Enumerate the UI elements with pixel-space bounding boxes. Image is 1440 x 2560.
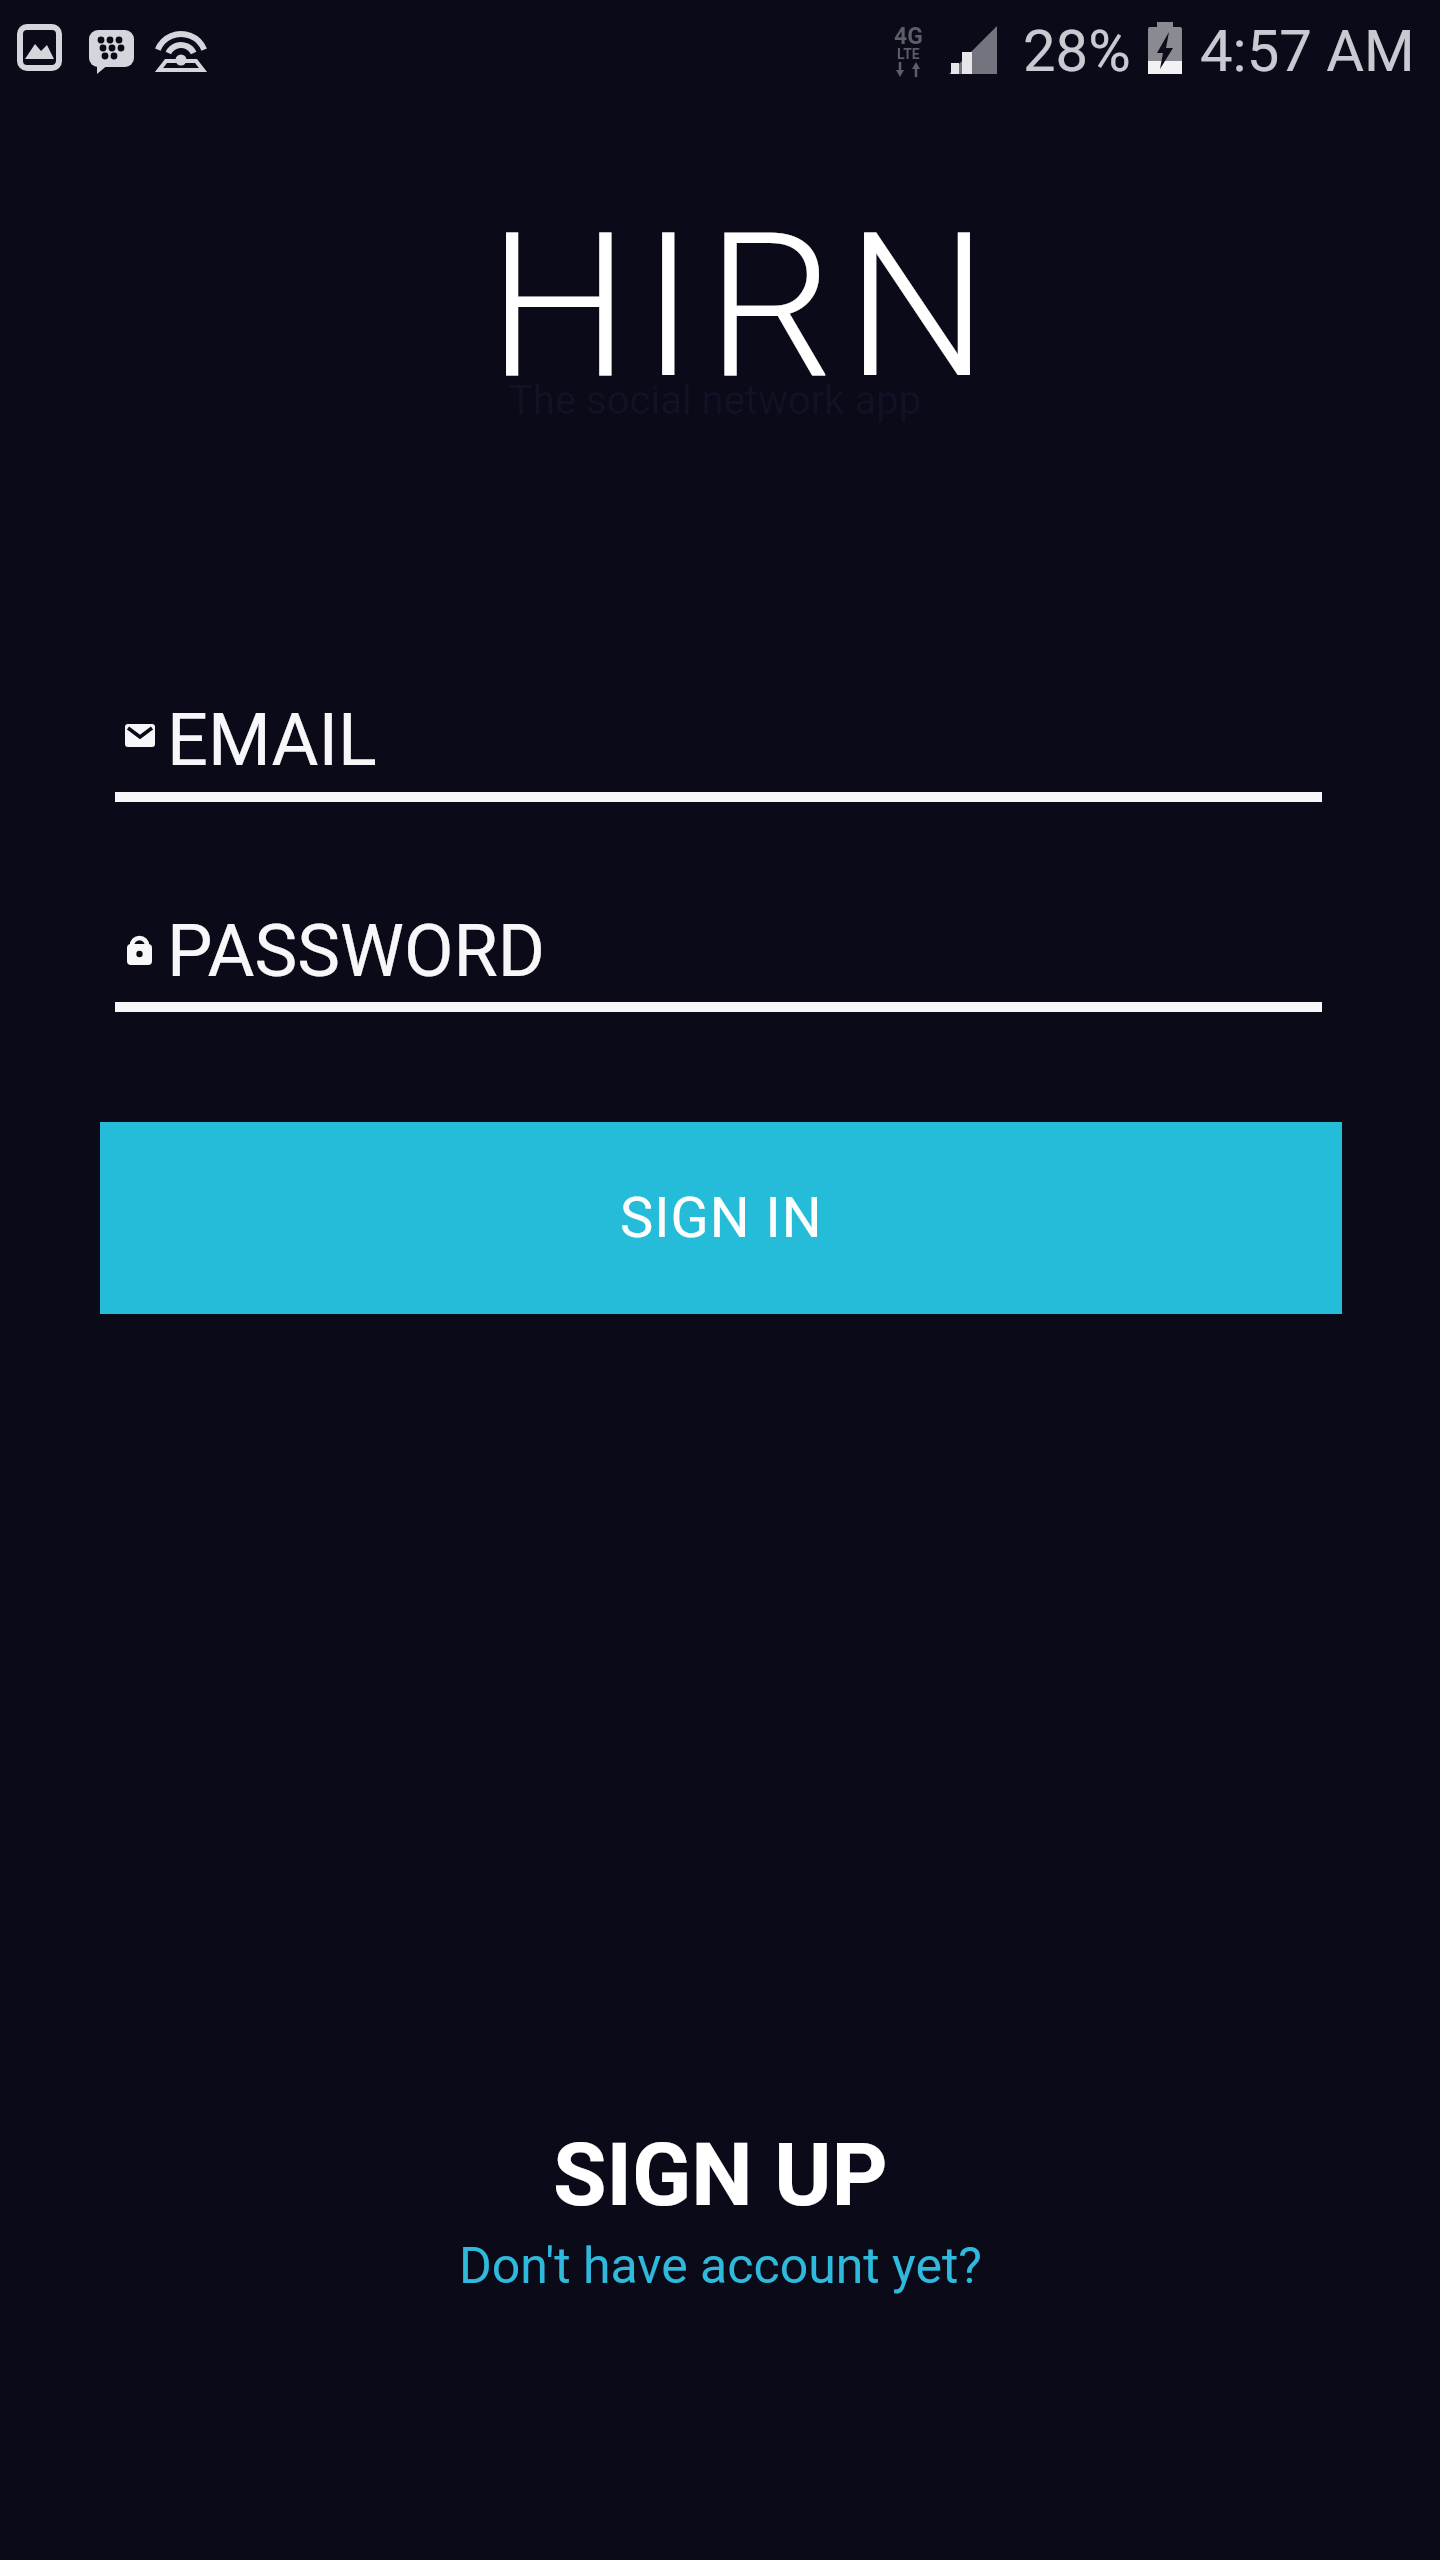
button[interactable]: SIGN UP <box>510 2115 930 2235</box>
staticText: HIRN <box>488 189 1000 423</box>
button[interactable]: Don't have account yet? <box>440 2230 1000 2302</box>
staticText: PASSWORD <box>167 909 546 993</box>
button[interactable]: SIGN IN <box>100 1122 1342 1314</box>
button[interactable] <box>115 900 1322 1018</box>
staticText: SIGN UP <box>553 2124 888 2226</box>
staticText: The social network app <box>509 377 922 424</box>
button[interactable] <box>115 690 1322 808</box>
staticText: LTE <box>897 46 920 62</box>
staticText: SIGN IN <box>620 1185 823 1251</box>
staticText: 28% <box>1023 17 1131 85</box>
staticText: 4G <box>894 23 923 50</box>
staticText: 4:57 AM <box>1200 17 1415 85</box>
staticText: EMAIL <box>167 698 377 782</box>
staticText: Don't have account yet? <box>459 2237 982 2296</box>
